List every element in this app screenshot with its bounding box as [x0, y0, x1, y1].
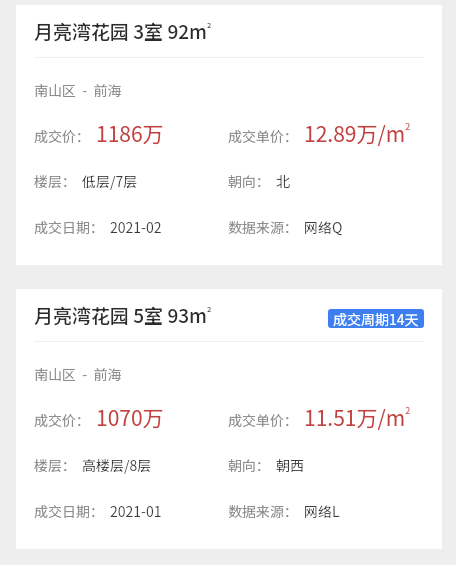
staticText: 朝向：	[228, 171, 270, 191]
staticText: 12.89万/m2	[304, 118, 411, 148]
staticText: 北	[276, 171, 290, 191]
staticText: 高楼层/8层	[82, 455, 152, 475]
button[interactable]: 月亮湾花园 5室 93m2	[16, 289, 442, 549]
staticText: 成交周期14天	[333, 309, 419, 328]
staticText: 11.51万/m2	[304, 402, 411, 432]
staticText: 月亮湾花园 5室 93m2	[34, 301, 212, 329]
staticText: 成交价：	[34, 126, 90, 146]
staticText: 楼层：	[34, 455, 76, 475]
staticText: 月亮湾花园 3室 92m2	[34, 17, 212, 45]
staticText: 成交日期：	[34, 217, 104, 237]
staticText: 网络L	[304, 501, 340, 521]
staticText: 成交单价：	[228, 410, 298, 430]
button[interactable]: 成交周期14天	[328, 309, 424, 328]
staticText: 2021-02	[110, 217, 162, 237]
staticText: 楼层：	[34, 171, 76, 191]
staticText: 网络Q	[304, 217, 343, 237]
staticText: 1186万	[96, 118, 164, 148]
staticText: 数据来源：	[228, 217, 298, 237]
staticText: 南山区 - 前海	[34, 80, 122, 100]
staticText: 成交价：	[34, 410, 90, 430]
staticText: 数据来源：	[228, 501, 298, 521]
staticText: 南山区 - 前海	[34, 364, 122, 384]
staticText: 2021-01	[110, 501, 162, 521]
staticText: 成交单价：	[228, 126, 298, 146]
staticText: 低层/7层	[82, 171, 138, 191]
staticText: 朝西	[276, 455, 304, 475]
staticText: 成交日期：	[34, 501, 104, 521]
staticText: 朝向：	[228, 455, 270, 475]
staticText: 1070万	[96, 402, 164, 432]
button[interactable]: 月亮湾花园 3室 92m2	[16, 5, 442, 265]
